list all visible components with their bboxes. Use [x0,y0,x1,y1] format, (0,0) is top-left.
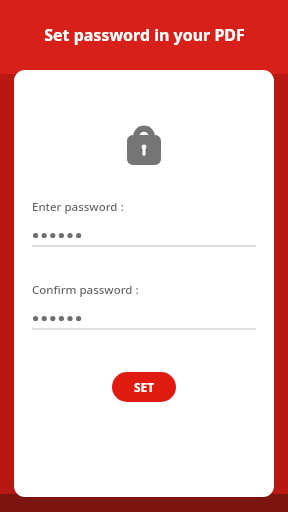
other: Password locked [127,113,161,165]
button[interactable]: Confirm password : [32,282,256,329]
staticText: Enter password : [32,199,124,215]
staticText: SET [134,379,155,395]
button[interactable]: Enter password : [32,199,256,246]
staticText: Set password in your PDF [44,24,245,46]
staticText: Confirm password : [32,282,139,298]
button[interactable]: SET [112,372,176,402]
